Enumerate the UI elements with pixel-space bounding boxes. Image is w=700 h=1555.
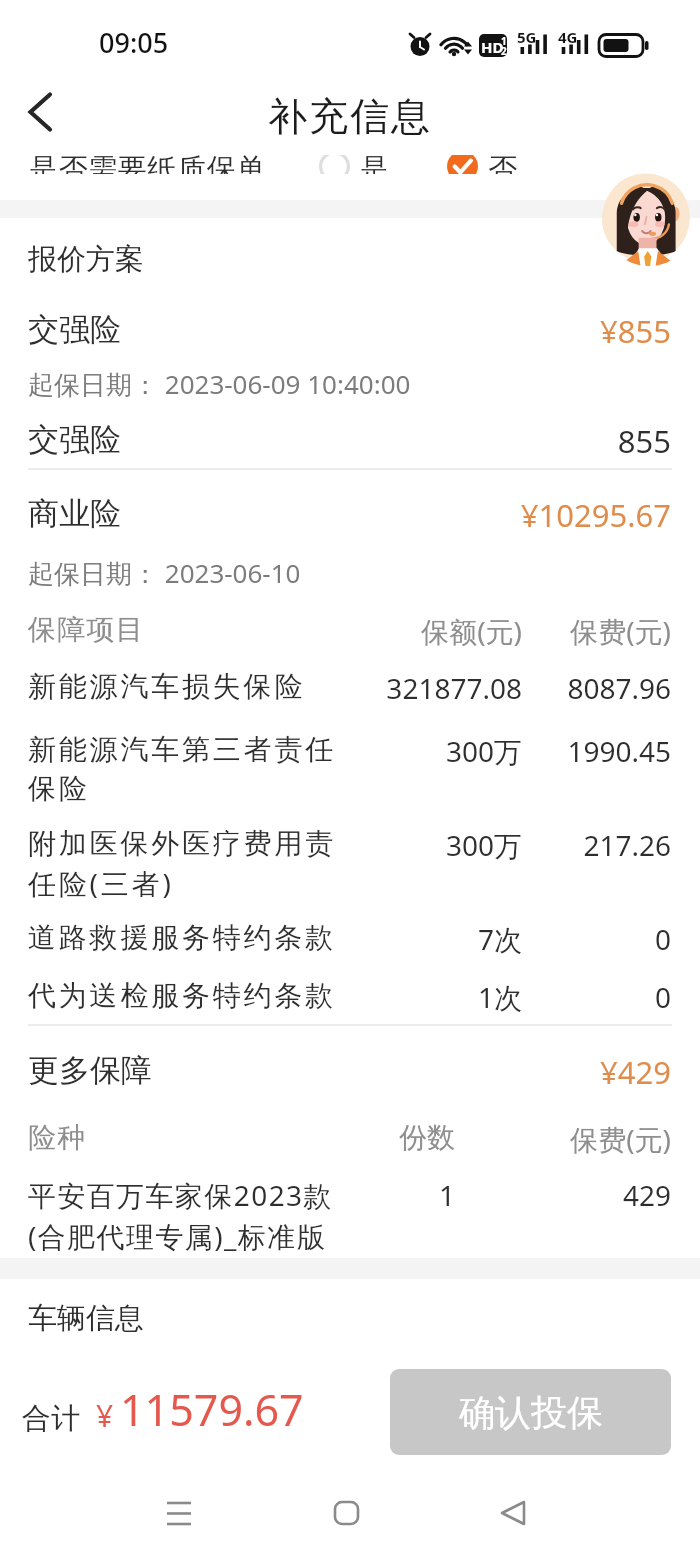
staticText: 1次: [0, 978, 522, 1016]
staticText: 补充信息: [0, 92, 700, 141]
staticText: 起保日期： 2023-06-09 10:40:00: [28, 366, 411, 402]
staticText: HD: [481, 37, 504, 57]
staticText: 是否需要纸质保单: [29, 155, 266, 174]
staticText: 300万: [0, 826, 522, 864]
staticText: 份数: [0, 1120, 455, 1155]
button[interactable]: Back: [4, 84, 72, 140]
staticText: 新能源汽车损失保险: [28, 669, 380, 704]
staticText: 1990.45: [0, 732, 671, 770]
staticText: 2: [501, 44, 507, 58]
staticText: 429: [0, 1176, 671, 1214]
button[interactable]: Recent apps: [144, 1471, 214, 1541]
staticText: 险种: [28, 1120, 87, 1155]
staticText: 交强险: [28, 310, 121, 349]
staticText: 车辆信息: [28, 1300, 144, 1337]
button[interactable]: 商业险: [0, 480, 700, 536]
staticText: ¥: [96, 1395, 114, 1436]
staticText: 0: [0, 978, 671, 1016]
staticText: 确认投保: [459, 1390, 603, 1435]
button[interactable]: 更多保障: [0, 1037, 700, 1093]
staticText: 代为送检服务特约条款: [28, 978, 380, 1013]
staticText: 交强险: [28, 420, 121, 459]
button[interactable]: Customer service: [602, 172, 696, 266]
staticText: 保额(元): [0, 612, 522, 650]
staticText: 平安百万车家保2023款 (合肥代理专属)_标准版: [28, 1176, 380, 1255]
staticText: 1: [0, 1176, 455, 1214]
button[interactable]: Home: [315, 1471, 385, 1541]
staticText: 09:05: [99, 24, 169, 61]
staticText: 4G: [558, 27, 578, 47]
staticText: 11579.67: [120, 1380, 304, 1439]
button[interactable]: 交强险: [0, 406, 700, 462]
button[interactable]: 否: [447, 155, 517, 174]
staticText: 起保日期： 2023-06-10: [28, 555, 301, 591]
staticText: 300万: [0, 732, 522, 770]
staticText: 8087.96: [0, 669, 671, 707]
staticText: 855: [0, 420, 671, 462]
staticText: 保障项目: [28, 612, 145, 647]
staticText: 1: [501, 34, 507, 48]
staticText: 更多保障: [28, 1051, 152, 1090]
staticText: 保费(元): [0, 612, 671, 650]
staticText: 5G: [517, 27, 537, 47]
staticText: 0: [0, 920, 671, 958]
staticText: 报价方案: [28, 241, 144, 278]
staticText: 321877.08: [0, 669, 522, 707]
staticText: 商业险: [28, 494, 121, 533]
staticText: 新能源汽车第三者责任 保险: [28, 732, 380, 806]
button[interactable]: 是: [319, 155, 389, 174]
staticText: 保费(元): [0, 1120, 671, 1158]
staticText: 附加医保外医疗费用责 任险(三者): [28, 826, 380, 902]
staticText: 7次: [0, 920, 522, 958]
staticText: 合计: [22, 1400, 80, 1437]
staticText: 217.26: [0, 826, 671, 864]
staticText: ¥429: [0, 1051, 671, 1093]
button[interactable]: 确认投保: [390, 1369, 671, 1455]
staticText: 道路救援服务特约条款: [28, 920, 380, 955]
staticText: 否: [488, 155, 517, 174]
staticText: 是: [360, 155, 389, 174]
staticText: ¥10295.67: [0, 494, 671, 536]
staticText: ¥855: [0, 310, 671, 352]
button[interactable]: 交强险: [0, 296, 700, 352]
button[interactable]: Back: [480, 1471, 550, 1541]
